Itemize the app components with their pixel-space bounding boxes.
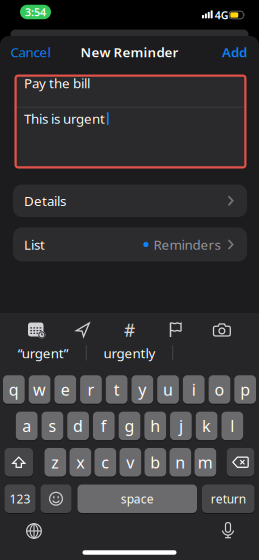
button[interactable]: u: [157, 375, 179, 404]
staticText: t: [114, 379, 120, 400]
button[interactable]: p: [234, 375, 256, 404]
button[interactable]: urgently: [88, 342, 170, 364]
staticText: k: [202, 415, 211, 436]
button[interactable]: y: [131, 375, 153, 404]
button[interactable]: Flag: [159, 317, 193, 343]
button[interactable]: m: [194, 447, 216, 477]
staticText: 4G: [215, 8, 229, 22]
staticText: 3:54: [25, 5, 46, 19]
button[interactable]: f: [93, 411, 115, 441]
staticText: c: [101, 452, 109, 473]
staticText: #: [124, 318, 135, 341]
button[interactable]: w: [29, 375, 50, 404]
staticText: q: [9, 379, 19, 400]
button[interactable]: r: [80, 375, 102, 404]
staticText: s: [48, 415, 56, 436]
staticText: x: [76, 452, 84, 473]
staticText: Add: [222, 43, 247, 61]
button[interactable]: Add date: [20, 317, 54, 343]
button[interactable]: x: [69, 447, 91, 477]
button[interactable]: j: [170, 411, 192, 441]
button[interactable]: i: [183, 375, 205, 404]
staticText: Pay the bill: [24, 74, 90, 92]
button[interactable]: Cancel: [10, 44, 70, 60]
button[interactable]: Shift: [4, 447, 33, 477]
button[interactable]: q: [3, 375, 25, 404]
button[interactable]: a: [16, 411, 37, 441]
staticText: z: [51, 452, 59, 473]
staticText: return: [211, 491, 246, 507]
staticText: w: [33, 379, 46, 400]
button[interactable]: “urgent”: [2, 342, 84, 364]
staticText: l: [230, 415, 234, 436]
button[interactable]: t: [106, 375, 127, 404]
staticText: o: [214, 379, 224, 400]
staticText: v: [126, 452, 134, 473]
button[interactable]: Add location: [66, 317, 100, 343]
staticText: e: [61, 379, 70, 400]
staticText: List: [24, 236, 45, 253]
staticText: Reminders: [153, 236, 220, 253]
staticText: Details: [24, 192, 66, 210]
button[interactable]: b: [144, 447, 166, 477]
button[interactable]: h: [144, 411, 166, 441]
button[interactable]: d: [67, 411, 89, 441]
button[interactable]: Pay the bill: [14, 75, 246, 107]
staticText: y: [138, 379, 146, 400]
staticText: u: [163, 379, 173, 400]
staticText: p: [240, 379, 250, 400]
staticText: f: [101, 415, 107, 436]
staticText: h: [150, 415, 160, 436]
staticText: Cancel: [10, 43, 50, 61]
staticText: m: [198, 452, 213, 473]
button[interactable]: Add: [207, 44, 247, 60]
staticText: This is urgent: [24, 110, 105, 127]
button[interactable]: Add tag: [112, 317, 146, 343]
staticText: urgently: [103, 344, 155, 362]
button[interactable]: z: [44, 447, 66, 477]
staticText: n: [175, 452, 185, 473]
button[interactable]: o: [209, 375, 230, 404]
button[interactable]: l: [221, 411, 243, 441]
button[interactable]: Delete: [227, 447, 254, 477]
button[interactable]: This is urgent: [14, 107, 246, 168]
staticText: space: [121, 491, 154, 507]
button[interactable]: space: [77, 484, 197, 513]
button[interactable]: c: [94, 447, 116, 477]
button[interactable]: g: [119, 411, 140, 441]
button[interactable]: 123: [4, 484, 35, 513]
staticText: r: [87, 379, 94, 400]
button[interactable]: s: [41, 411, 63, 441]
button[interactable]: Details: [13, 184, 247, 217]
staticText: b: [150, 452, 160, 473]
staticText: a: [22, 415, 31, 436]
staticText: 123: [9, 491, 30, 507]
staticText: “urgent”: [18, 344, 69, 362]
staticText: d: [73, 415, 83, 436]
staticText: New Reminder: [80, 43, 178, 61]
button[interactable]: Camera: [205, 317, 239, 343]
button[interactable]: n: [169, 447, 191, 477]
staticText: j: [179, 415, 183, 436]
button[interactable]: v: [119, 447, 141, 477]
button[interactable]: Next keyboard: [26, 523, 42, 539]
staticText: g: [124, 415, 134, 436]
button[interactable]: Dictate: [222, 521, 234, 538]
button[interactable]: return: [202, 484, 254, 513]
button[interactable]: Emoji: [40, 484, 71, 513]
staticText: i: [192, 379, 196, 400]
button[interactable]: List: [13, 227, 247, 261]
button[interactable]: k: [196, 411, 217, 441]
button[interactable]: e: [54, 375, 76, 404]
